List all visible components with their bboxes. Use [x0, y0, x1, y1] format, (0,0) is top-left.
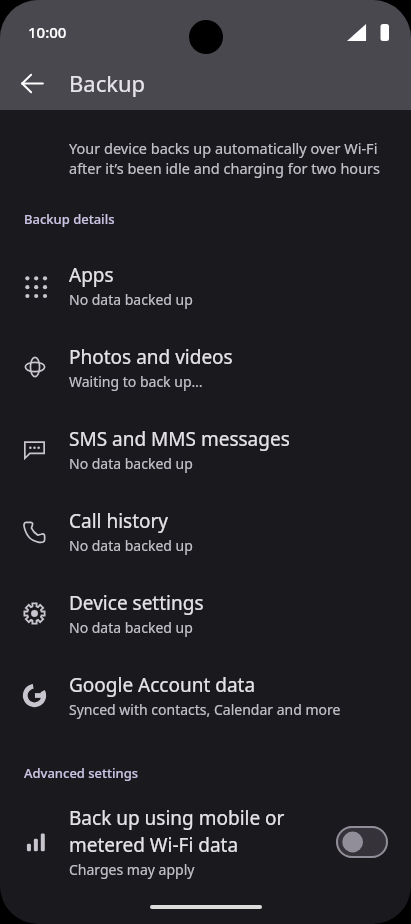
button[interactable]: SMS and MMS messages	[0, 408, 411, 490]
staticText: Backup details	[24, 210, 115, 228]
button[interactable]: Back	[9, 60, 55, 106]
staticText: Photos and videos	[69, 344, 233, 370]
button[interactable]: Device settings	[0, 572, 411, 654]
button[interactable]: Apps	[0, 244, 411, 326]
staticText: Call history	[69, 508, 169, 534]
staticText: No data backed up	[69, 536, 193, 555]
staticText: Backup	[69, 68, 146, 98]
staticText: Charges may apply	[69, 860, 195, 879]
staticText: Apps	[69, 262, 114, 288]
staticText: 10:00	[28, 22, 67, 42]
button[interactable]: Back up using mobile or metered Wi-Fi da…	[0, 798, 411, 886]
button[interactable]: Google Account data	[0, 654, 411, 736]
staticText: Synced with contacts, Calendar and more	[69, 700, 341, 719]
staticText: Google Account data	[69, 672, 256, 698]
staticText: Your device backs up automatically over …	[69, 138, 381, 179]
button[interactable]: Back up using mobile or metered Wi-Fi da…	[331, 819, 393, 865]
staticText: No data backed up	[69, 290, 193, 309]
button[interactable]: Photos and videos	[0, 326, 411, 408]
staticText: Device settings	[69, 590, 204, 616]
staticText: SMS and MMS messages	[69, 426, 290, 452]
staticText: No data backed up	[69, 454, 193, 473]
button[interactable]: Call history	[0, 490, 411, 572]
staticText: Advanced settings	[24, 764, 139, 782]
staticText: Waiting to back up…	[69, 372, 203, 391]
staticText: No data backed up	[69, 618, 193, 637]
staticText: Back up using mobile or metered Wi-Fi da…	[69, 805, 285, 858]
